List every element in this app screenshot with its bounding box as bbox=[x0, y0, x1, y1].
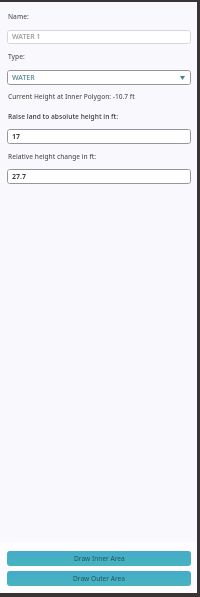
button[interactable]: Draw Inner Area bbox=[7, 551, 191, 566]
button[interactable]: WATER bbox=[7, 70, 191, 85]
staticText: Raise land to absolute height in ft: bbox=[8, 112, 119, 121]
staticText: 27.7 bbox=[12, 172, 26, 182]
staticText: 17 bbox=[12, 132, 21, 142]
staticText: WATER 1 bbox=[12, 32, 41, 42]
button[interactable]: Draw Outer Area bbox=[7, 571, 191, 586]
other: Open type dropdown bbox=[180, 76, 185, 80]
staticText: Relative height change in ft: bbox=[8, 152, 97, 161]
staticText: Current Height at Inner Polygon: -10.7 f… bbox=[8, 92, 135, 101]
button[interactable]: 27.7 bbox=[7, 169, 191, 184]
staticText: WATER bbox=[12, 73, 35, 83]
staticText: Draw Inner Area bbox=[74, 554, 125, 563]
staticText: Type: bbox=[8, 52, 25, 61]
staticText: Name: bbox=[8, 12, 29, 21]
staticText: Draw Outer Area bbox=[73, 574, 125, 583]
button[interactable]: WATER 1 bbox=[7, 30, 191, 44]
button[interactable]: 17 bbox=[7, 129, 191, 144]
